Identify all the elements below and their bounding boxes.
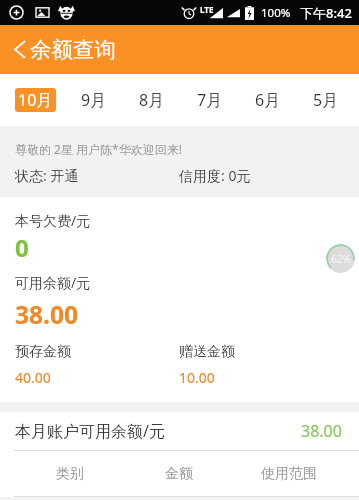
button[interactable]: 6月 [247,88,288,112]
staticText: 6月 [255,89,281,111]
staticText: 38.00 [301,420,342,442]
staticText: 5月 [313,89,339,111]
staticText: 0 [15,231,29,264]
staticText: 8月 [139,89,165,111]
button[interactable]: 8月 [131,88,172,112]
staticText: 7月 [197,89,223,111]
button[interactable]: 类别 [15,451,124,496]
staticText: 9月 [81,89,107,111]
button[interactable]: 金额 [124,451,234,496]
button[interactable]: 9月 [73,88,114,112]
staticText: 下午8:42 [300,4,352,22]
staticText: 信用度: 0元 [179,166,251,185]
staticText: 本号欠费/元 [15,211,91,230]
button[interactable]: 5月 [305,88,346,112]
staticText: 40.00 [15,368,51,387]
staticText: 10月 [18,89,53,111]
staticText: 预存金额 [15,343,71,361]
staticText: 可用余额/元 [15,273,91,292]
staticText: 尊敬的 2星 用户陈*华欢迎回来! [15,141,182,157]
staticText: 赠送金额 [179,343,235,361]
staticText: 使用范围 [261,465,317,483]
button[interactable]: Battery 62 percent [326,244,355,273]
staticText: 状态: 开通 [15,166,79,185]
staticText: LTE [200,4,214,15]
button[interactable]: Back [0,25,359,74]
button[interactable]: 使用范围 [234,451,344,496]
staticText: 38.00 [15,298,78,331]
other: Back [14,41,25,58]
staticText: 类别 [56,465,84,483]
staticText: 10.00 [179,368,215,387]
staticText: 本月账户可用余额/元 [15,420,165,442]
button[interactable]: 7月 [189,88,230,112]
staticText: 金额 [165,465,193,483]
button[interactable]: 10月 [15,88,56,112]
staticText: 100% [261,5,291,21]
staticText: 余额查询 [30,36,116,63]
staticText: 62% [331,252,351,266]
